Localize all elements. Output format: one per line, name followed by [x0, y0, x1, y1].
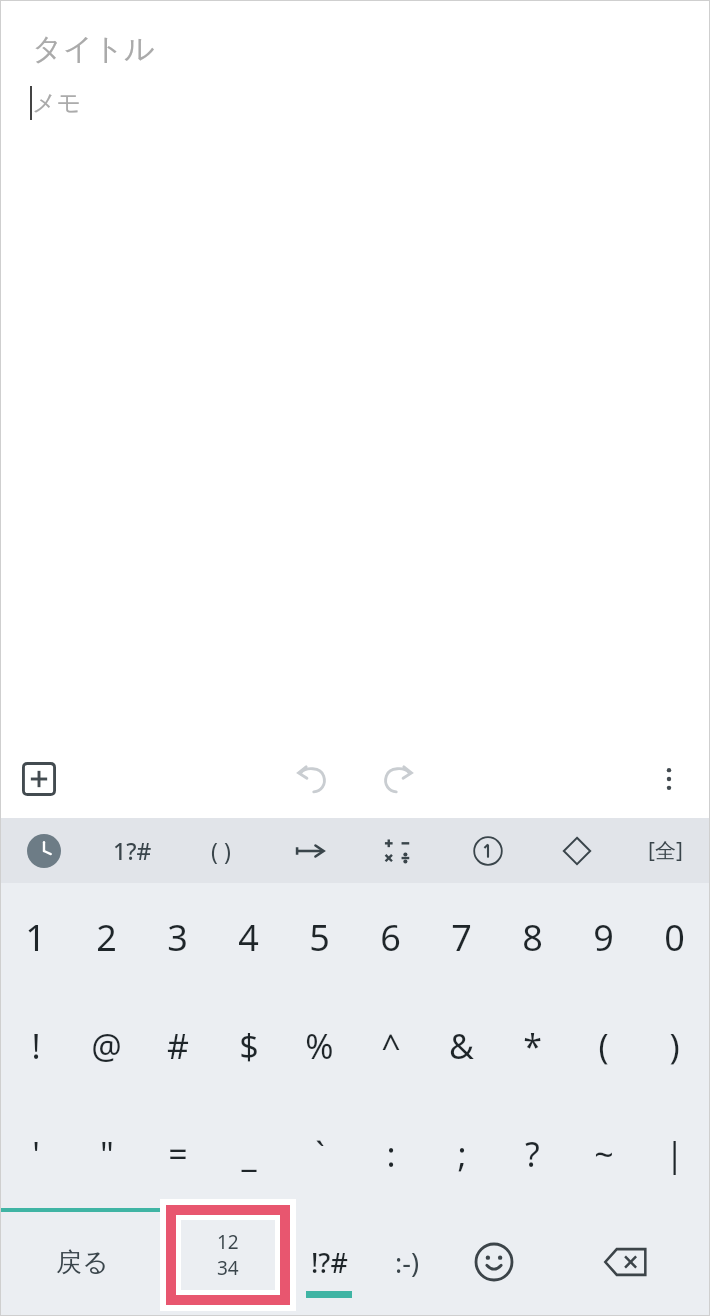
staticText: ;: [457, 1131, 467, 1177]
staticText: 4: [238, 913, 259, 962]
button[interactable]: _: [213, 1100, 284, 1208]
button[interactable]: #: [142, 992, 213, 1100]
button[interactable]: タイトル: [0, 0, 710, 740]
staticText: #: [167, 1023, 189, 1069]
staticText: 34: [217, 1255, 239, 1281]
staticText: 2: [96, 913, 117, 962]
button[interactable]: Full width: [621, 818, 710, 883]
staticText: タイトル: [32, 30, 155, 68]
staticText: ): [669, 1023, 680, 1069]
staticText: `: [315, 1131, 325, 1177]
staticText: [全]: [648, 836, 683, 865]
staticText: =: [168, 1131, 188, 1177]
button[interactable]: Recent: [0, 818, 88, 883]
button[interactable]: $: [213, 992, 284, 1100]
staticText: 9: [593, 913, 614, 962]
button[interactable]: !: [0, 992, 71, 1100]
button[interactable]: &: [426, 992, 497, 1100]
button[interactable]: |: [639, 1100, 710, 1208]
staticText: 12: [217, 1236, 239, 1262]
button[interactable]: 3: [142, 883, 213, 992]
button[interactable]: 9: [568, 883, 639, 992]
staticText: &: [449, 1023, 474, 1069]
staticText: 戻る: [56, 1246, 109, 1279]
button[interactable]: Add: [16, 756, 62, 802]
staticText: 8: [522, 913, 543, 962]
staticText: 7: [451, 913, 472, 962]
button[interactable]: ?: [497, 1100, 568, 1208]
staticText: :-): [395, 1244, 420, 1281]
button[interactable]: :-): [368, 1208, 446, 1316]
button[interactable]: !?#: [290, 1208, 368, 1316]
button[interactable]: Emoji: [446, 1208, 541, 1316]
button[interactable]: Undo: [285, 751, 341, 807]
button[interactable]: Symbols 1?#: [88, 818, 176, 883]
staticText: ?: [525, 1131, 540, 1177]
button[interactable]: 6: [355, 883, 426, 992]
staticText: %: [305, 1023, 334, 1069]
button[interactable]: =: [142, 1100, 213, 1208]
button[interactable]: 0: [639, 883, 710, 992]
button[interactable]: (: [568, 992, 639, 1100]
button[interactable]: ~: [568, 1100, 639, 1208]
staticText: 3: [167, 913, 188, 962]
button[interactable]: ^: [355, 992, 426, 1100]
staticText: ^: [381, 1023, 401, 1069]
button[interactable]: ): [639, 992, 710, 1100]
button[interactable]: 2: [71, 883, 142, 992]
staticText: ( ): [211, 835, 231, 866]
staticText: |: [665, 1131, 684, 1177]
button[interactable]: 戻る: [0, 1208, 165, 1316]
button[interactable]: Circled numbers: [443, 818, 532, 883]
button[interactable]: 8: [497, 883, 568, 992]
staticText: !: [31, 1023, 41, 1069]
staticText: 34: [217, 1262, 239, 1288]
staticText: $: [239, 1023, 259, 1069]
button[interactable]: 5: [284, 883, 355, 992]
staticText: (: [598, 1023, 609, 1069]
button[interactable]: ": [71, 1100, 142, 1208]
button[interactable]: 7: [426, 883, 497, 992]
staticText: メモ: [32, 88, 82, 118]
button[interactable]: :: [355, 1100, 426, 1208]
button[interactable]: `: [284, 1100, 355, 1208]
staticText: :: [386, 1131, 396, 1177]
button[interactable]: Brackets: [176, 818, 265, 883]
staticText: 0: [664, 913, 685, 962]
staticText: ': [32, 1131, 40, 1177]
staticText: ": [100, 1131, 114, 1177]
button[interactable]: Arrow: [265, 818, 354, 883]
staticText: 1: [25, 913, 46, 962]
staticText: ~: [594, 1131, 614, 1177]
staticText: 5: [309, 913, 330, 962]
staticText: *: [523, 1023, 542, 1069]
button[interactable]: *: [497, 992, 568, 1100]
button[interactable]: ;: [426, 1100, 497, 1208]
button[interactable]: 4: [213, 883, 284, 992]
staticText: _: [241, 1131, 257, 1177]
button[interactable]: @: [71, 992, 142, 1100]
staticText: 1?#: [113, 835, 152, 866]
button[interactable]: %: [284, 992, 355, 1100]
button[interactable]: ': [0, 1100, 71, 1208]
button[interactable]: Shapes: [532, 818, 621, 883]
button[interactable]: More options: [644, 754, 694, 804]
button[interactable]: Backspace: [541, 1208, 710, 1316]
button[interactable]: 1: [0, 883, 71, 992]
staticText: 6: [380, 913, 401, 962]
button[interactable]: 12: [165, 1208, 290, 1316]
staticText: 12: [217, 1229, 239, 1255]
staticText: !?#: [311, 1244, 348, 1281]
button[interactable]: Redo: [369, 751, 425, 807]
button[interactable]: Math symbols: [354, 818, 443, 883]
staticText: @: [91, 1023, 122, 1069]
